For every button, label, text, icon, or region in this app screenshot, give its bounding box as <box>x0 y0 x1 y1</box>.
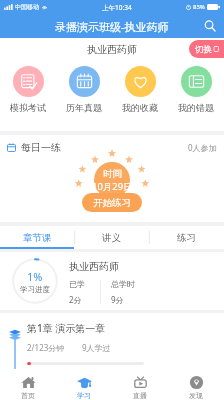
staticText: 发现 <box>189 391 203 400</box>
button[interactable]: 模拟考试 <box>0 60 56 113</box>
button[interactable]: 我的错题 <box>168 60 224 113</box>
staticText: 0人参加 <box>188 142 217 153</box>
staticText: 执业西药师 <box>87 43 137 56</box>
staticText: 练习 <box>177 232 196 244</box>
button[interactable]: Search <box>201 17 219 35</box>
button[interactable]: 切换 <box>189 40 224 58</box>
button[interactable]: 练习 <box>149 226 224 249</box>
staticText: 2分 <box>69 294 82 305</box>
staticText: 学习进度 <box>20 285 50 294</box>
staticText: 1% <box>27 269 43 284</box>
staticText: 章节课 <box>23 232 52 244</box>
staticText: 执业西药师 <box>69 260 119 273</box>
staticText: 2/123分钟 <box>27 342 65 353</box>
button[interactable]: 章节课 <box>0 226 74 249</box>
staticText: 模拟考试 <box>10 102 46 113</box>
staticText: 中国移动 <box>15 3 39 11</box>
button[interactable]: 开始练习 <box>82 193 142 212</box>
button[interactable]: 历年真题 <box>56 60 112 113</box>
staticText: 切换 <box>195 44 212 55</box>
staticText: 开始练习 <box>93 197 131 209</box>
staticText: 10月29日 <box>92 180 133 193</box>
button[interactable]: 直播 <box>112 371 168 400</box>
staticText: 我的收藏 <box>122 102 158 113</box>
staticText: 已学 <box>69 279 85 289</box>
button[interactable]: 讲义 <box>74 226 149 249</box>
staticText: 上午10:34 <box>102 3 132 12</box>
staticText: 讲义 <box>102 232 121 244</box>
staticText: 9人学过 <box>82 342 111 353</box>
button[interactable]: 我的收藏 <box>112 60 168 113</box>
staticText: 直播 <box>133 391 147 400</box>
staticText: 录播演示班级-执业药师 <box>55 19 169 34</box>
staticText: 85% <box>193 3 205 11</box>
staticText: 首页 <box>21 391 35 400</box>
staticText: 9分 <box>111 294 124 305</box>
staticText: 历年真题 <box>66 102 102 113</box>
button[interactable]: 发现 <box>168 371 224 400</box>
staticText: 时间 <box>103 168 122 180</box>
staticText: 我的错题 <box>178 102 214 113</box>
staticText: 第1章 演示第一章 <box>27 321 106 335</box>
button[interactable]: 首页 <box>0 371 56 400</box>
button[interactable]: 第1章 演示第一章 <box>0 313 224 370</box>
staticText: 学习 <box>77 391 91 400</box>
button[interactable]: 学习 <box>56 371 112 400</box>
staticText: 每日一练 <box>21 141 61 154</box>
staticText: 总学时 <box>111 279 135 289</box>
